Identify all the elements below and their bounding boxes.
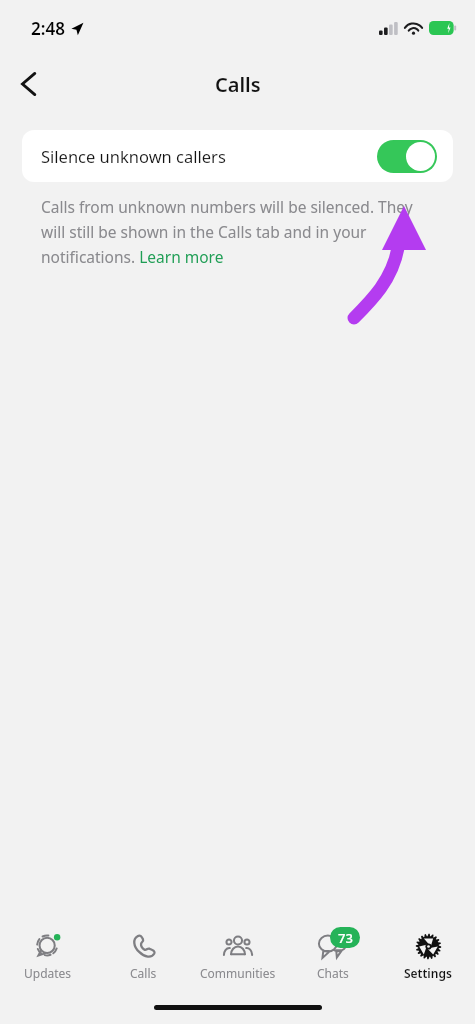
- button[interactable]: Calls: [98, 920, 188, 996]
- staticText: 73: [338, 929, 353, 947]
- button[interactable]: Communities: [193, 920, 283, 996]
- button[interactable]: Back: [6, 62, 50, 106]
- staticText: Silence unknown callers: [41, 145, 226, 167]
- staticText: Calls from unknown numbers will be silen…: [41, 196, 434, 267]
- staticText: Calls: [130, 965, 157, 981]
- staticText: Communities: [200, 965, 276, 981]
- button[interactable]: 73: [288, 920, 378, 996]
- button[interactable]: Updates: [3, 920, 93, 996]
- button[interactable]: Settings: [383, 920, 473, 996]
- staticText: 2:48: [31, 17, 65, 40]
- staticText: Updates: [24, 965, 72, 981]
- staticText: Settings: [404, 965, 452, 981]
- staticText: Chats: [317, 965, 349, 981]
- staticText: Calls: [215, 71, 261, 98]
- button[interactable]: Silence unknown callers toggle: [377, 140, 437, 173]
- button[interactable]: Silence unknown callers: [22, 130, 453, 182]
